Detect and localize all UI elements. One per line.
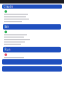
staticText: Run xyxy=(4,48,10,51)
button[interactable]: Run xyxy=(0,47,64,52)
button[interactable]: Edit xyxy=(0,24,64,30)
staticText: Edit xyxy=(4,25,9,29)
button[interactable] xyxy=(0,59,64,65)
button[interactable]: Claude xyxy=(0,4,64,9)
staticText: Claude xyxy=(3,5,13,8)
button[interactable] xyxy=(0,66,64,72)
